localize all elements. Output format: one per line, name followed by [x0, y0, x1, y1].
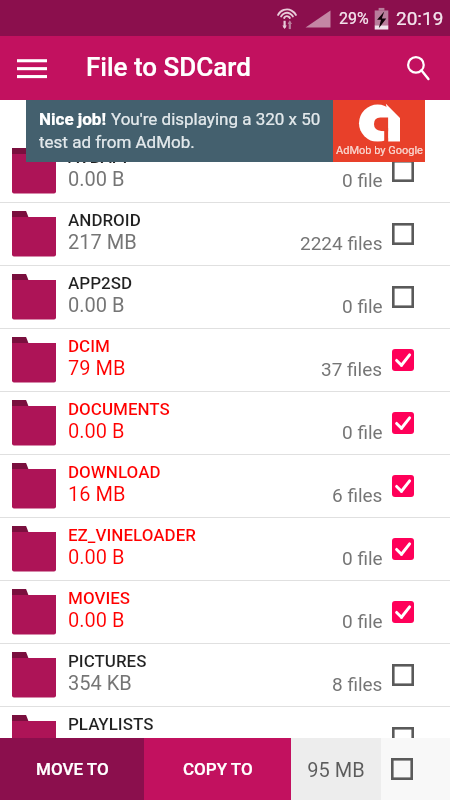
button[interactable]: Select APP2SD — [386, 280, 420, 314]
button[interactable]: APP2SD — [0, 266, 450, 328]
button[interactable]: MOVIES — [0, 581, 450, 643]
staticText: 0 file — [342, 547, 383, 569]
button[interactable]: Menu — [8, 44, 56, 92]
button[interactable]: Select EZ_VINELOADER — [386, 532, 420, 566]
button[interactable]: DOWNLOAD — [0, 455, 450, 517]
staticText: 0 file — [342, 169, 383, 191]
button[interactable]: Select ANDROID — [386, 217, 420, 251]
button[interactable]: Search — [394, 44, 442, 92]
staticText: 79 MB — [68, 356, 126, 379]
staticText: File to SDCard — [86, 52, 251, 82]
button[interactable]: MOVE TO — [0, 738, 144, 800]
staticText: 16 MB — [68, 482, 126, 505]
button[interactable]: Select MOVIES — [386, 595, 420, 629]
button[interactable]: AVBAPI — [0, 140, 450, 202]
staticText: DOWNLOAD — [68, 462, 161, 482]
staticText: test ad from AdMob. — [39, 132, 195, 152]
staticText: 0.00 B — [68, 608, 125, 631]
staticText: 8 files — [332, 673, 383, 695]
staticText: 0.00 B — [68, 167, 125, 190]
staticText: 0 file — [342, 421, 383, 443]
button[interactable]: Select PICTURES — [386, 658, 420, 692]
button[interactable]: Select DOWNLOAD — [386, 469, 420, 503]
staticText: DCIM — [68, 336, 110, 356]
button[interactable]: Select AVBAPI — [386, 154, 420, 188]
staticText: 354 KB — [68, 671, 132, 694]
staticText: AVBAPI — [68, 147, 128, 167]
button[interactable]: DCIM — [0, 329, 450, 391]
button[interactable]: Select PLAYLISTS — [386, 721, 420, 738]
button[interactable]: EZ_VINELOADER — [0, 518, 450, 580]
button[interactable]: Select DCIM — [386, 343, 420, 377]
staticText: MOVIES — [68, 588, 131, 608]
staticText: PICTURES — [68, 651, 147, 671]
staticText: 217 MB — [68, 230, 137, 253]
button[interactable]: DOCUMENTS — [0, 392, 450, 454]
staticText: 37 files — [321, 358, 383, 380]
staticText: You're displaying a 320 x 50 — [111, 109, 321, 129]
staticText: 6 files — [332, 484, 383, 506]
staticText: Nice job! — [39, 109, 111, 129]
staticText: MOVE TO — [36, 759, 109, 779]
staticText: PLAYLISTS — [68, 714, 154, 734]
staticText: 29% — [339, 9, 369, 28]
staticText: 0.00 B — [68, 419, 125, 442]
staticText: AdMob by Google — [336, 144, 423, 157]
staticText: 95 MB — [307, 758, 365, 781]
staticText: COPY TO — [183, 759, 253, 779]
staticText: 0 file — [342, 610, 383, 632]
button[interactable]: PLAYLISTS — [0, 707, 450, 738]
button[interactable]: Select all — [382, 749, 422, 789]
staticText: DOCUMENTS — [68, 399, 170, 419]
staticText: 0.00 B — [68, 545, 125, 568]
staticText: 20:19 — [396, 7, 444, 29]
button[interactable]: ANDROID — [0, 203, 450, 265]
staticText: EZ_VINELOADER — [68, 525, 196, 545]
staticText: 0.00 B — [68, 293, 125, 316]
button[interactable]: PICTURES — [0, 644, 450, 706]
staticText: ANDROID — [68, 210, 141, 230]
button[interactable]: COPY TO — [144, 738, 291, 800]
button[interactable]: Select DOCUMENTS — [386, 406, 420, 440]
staticText: APP2SD — [68, 273, 133, 293]
staticText: 2224 files — [300, 232, 383, 254]
staticText: 0 file — [342, 295, 383, 317]
